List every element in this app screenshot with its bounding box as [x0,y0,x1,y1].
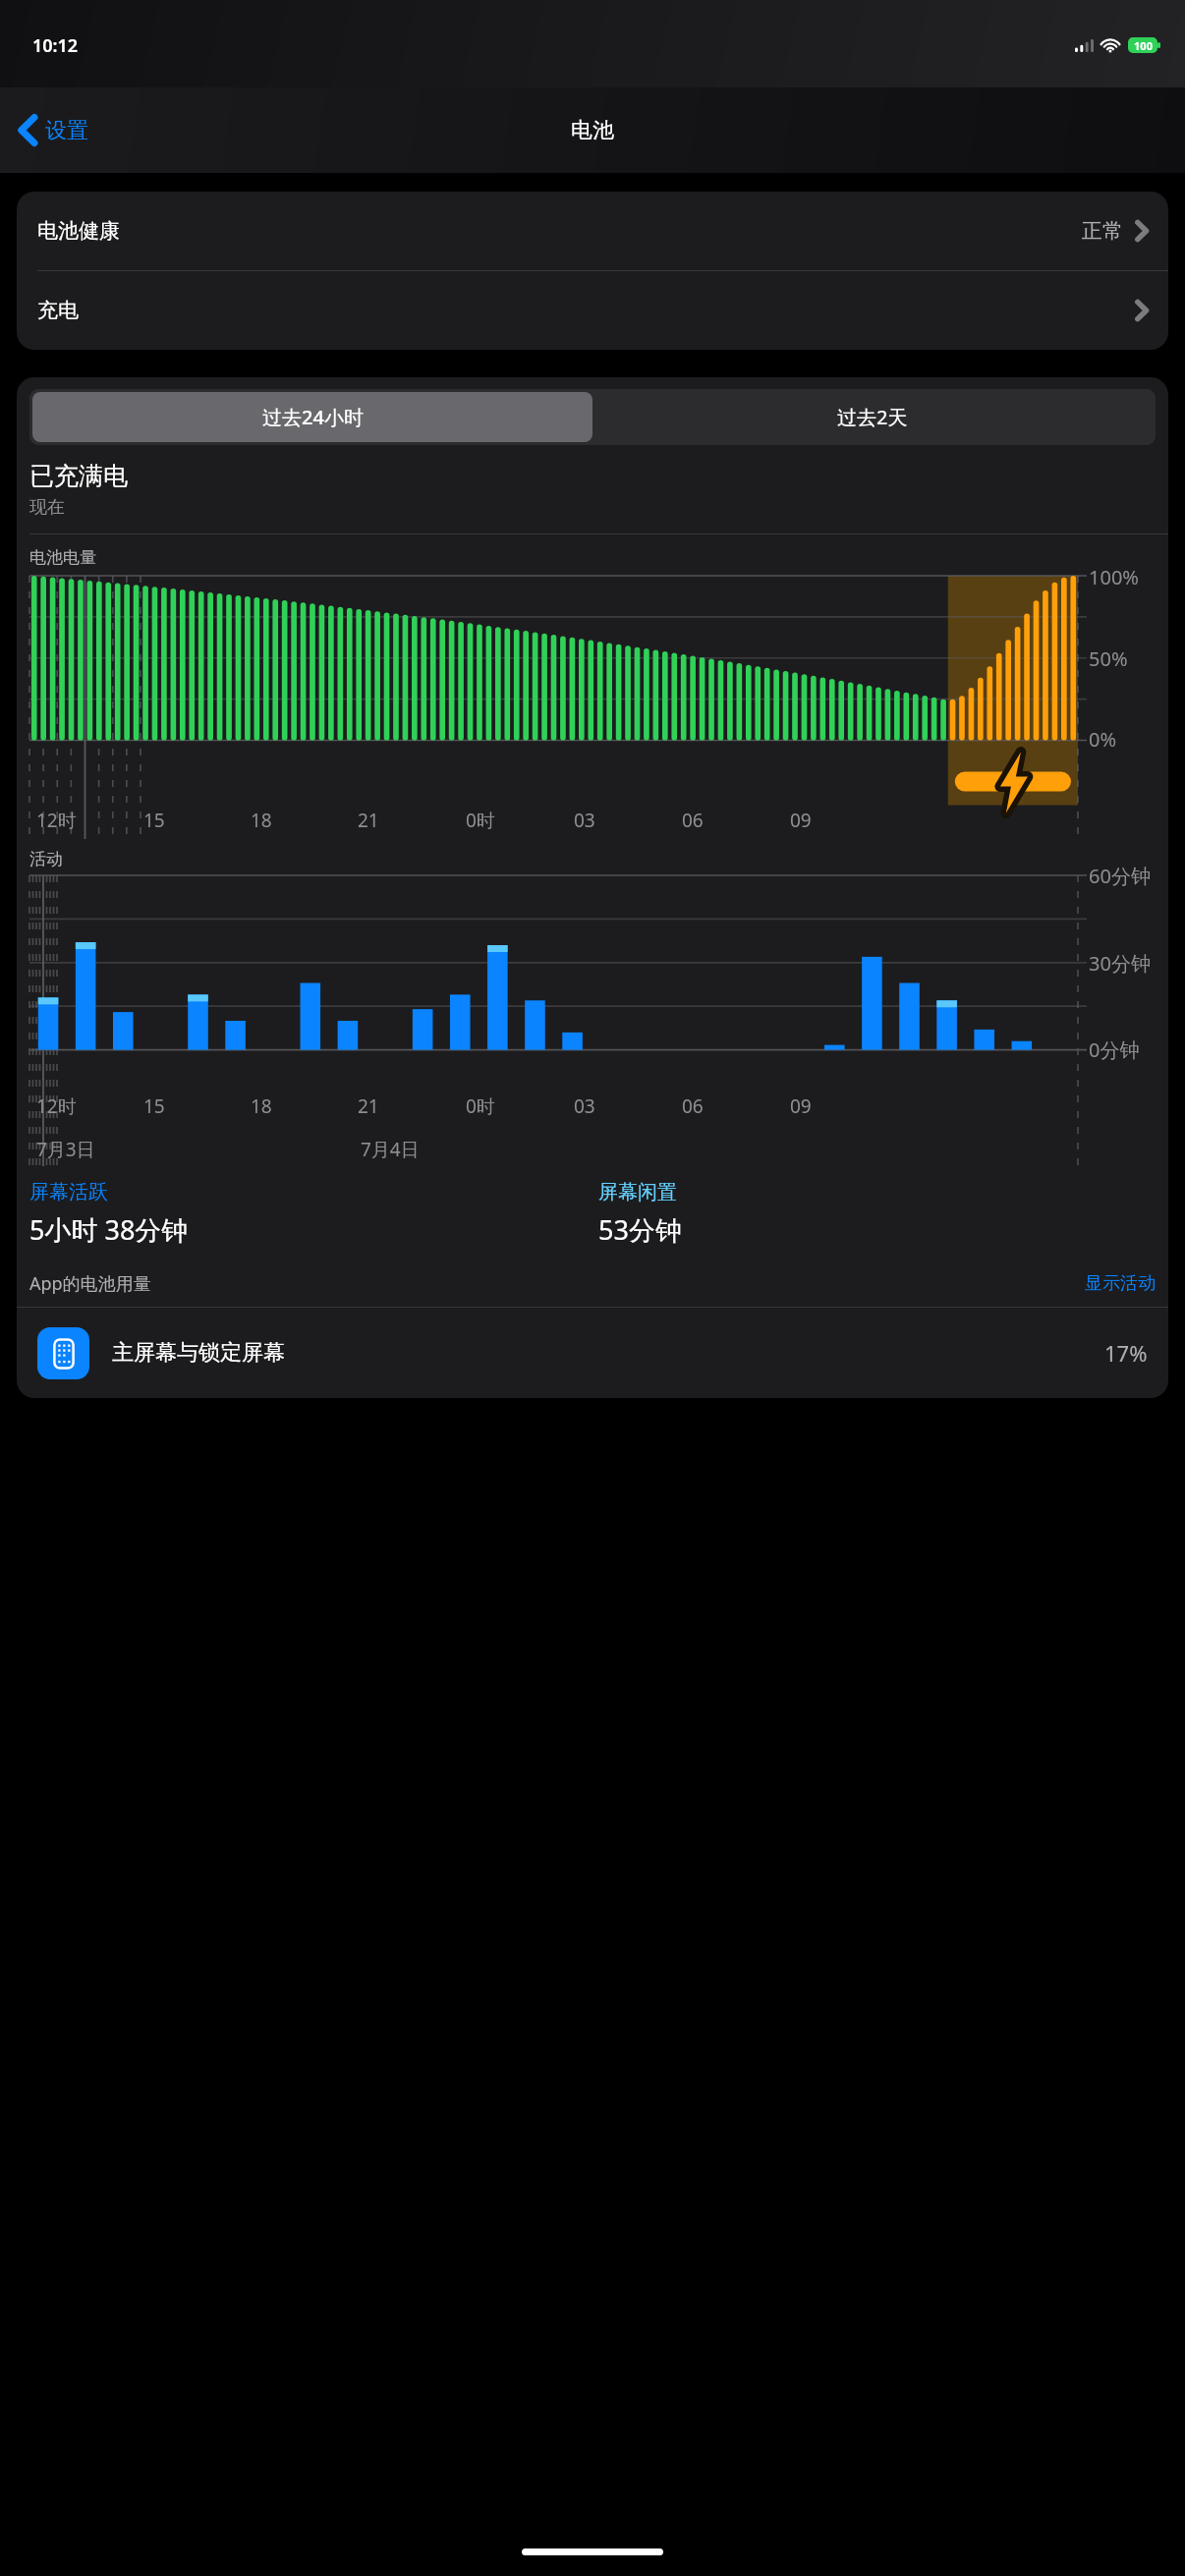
staticText: 过去24小时 [262,404,364,430]
staticText: 7月4日 [361,1137,420,1162]
staticText: 15 [143,808,165,833]
staticText: 设置 [45,117,88,144]
staticText: 09 [790,1093,812,1119]
staticText: 已充满电 [29,461,128,491]
staticText: 活动 [29,849,63,869]
staticText: 09 [790,808,812,833]
staticText: 显示活动 [1085,1272,1156,1295]
button[interactable]: 主屏幕与锁定屏幕 [17,1308,1168,1398]
staticText: 06 [682,1093,704,1119]
staticText: 0分钟 [1089,1036,1140,1063]
staticText: 5小时 38分钟 [29,1211,189,1248]
staticText: 17% [1104,1338,1148,1368]
staticText: 06 [682,808,704,833]
staticText: 电池 [571,117,614,144]
staticText: 21 [358,808,379,833]
staticText: 15 [143,1093,165,1119]
staticText: 屏幕活跃 [29,1180,108,1204]
staticText: 18 [251,1093,272,1119]
staticText: 50% [1089,645,1128,672]
staticText: 12时 [36,1093,77,1119]
staticText: 100% [1089,564,1139,590]
button[interactable]: 过去24小时 [32,392,592,442]
button[interactable]: 返回 设置 [14,108,94,152]
staticText: 正常 [1082,218,1123,244]
staticText: 过去2天 [837,404,908,430]
staticText: 7月3日 [36,1137,95,1162]
staticText: App的电池用量 [29,1271,151,1296]
staticText: 21 [358,1093,379,1119]
staticText: 电池健康 [37,218,120,244]
staticText: 60分钟 [1089,863,1151,889]
staticText: 53分钟 [598,1211,682,1248]
staticText: 0% [1089,726,1117,753]
staticText: 100 [1134,38,1153,53]
staticText: 30分钟 [1089,950,1151,977]
staticText: 电池电量 [29,547,96,568]
button[interactable]: 电池健康 [17,192,1168,270]
button[interactable]: 充电 [17,271,1168,350]
staticText: 充电 [37,298,79,323]
staticText: 03 [574,1093,595,1119]
staticText: 主屏幕与锁定屏幕 [112,1339,285,1367]
staticText: 0时 [466,808,495,833]
staticText: 18 [251,808,272,833]
staticText: 0时 [466,1093,495,1119]
button[interactable]: 显示活动 [1085,1272,1156,1295]
staticText: 屏幕闲置 [598,1180,677,1204]
staticText: 现在 [29,496,65,519]
staticText: 12时 [36,808,77,833]
button[interactable]: 过去2天 [592,392,1153,442]
staticText: 03 [574,808,595,833]
staticText: 10:12 [32,33,79,58]
